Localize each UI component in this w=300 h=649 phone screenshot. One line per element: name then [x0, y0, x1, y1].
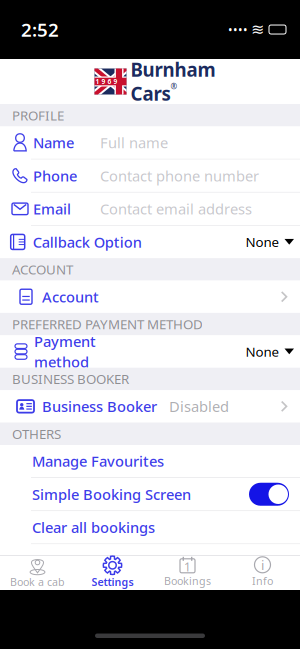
button[interactable]: Simple Booking Screen	[0, 478, 300, 510]
staticText: PROFILE	[12, 106, 64, 124]
button[interactable]: Book a cab	[0, 556, 75, 590]
staticText: Payment	[34, 332, 96, 351]
staticText: Bookings	[164, 574, 211, 588]
staticText: None	[245, 343, 279, 360]
staticText: 1 9 6 9	[95, 77, 117, 86]
staticText: ®	[170, 81, 177, 92]
staticText: ••••	[228, 21, 251, 37]
staticText: Clear all bookings	[32, 518, 155, 537]
button[interactable]: Phone	[0, 160, 300, 192]
staticText: PREFERRED PAYMENT METHOD	[12, 315, 203, 333]
staticText: Phone	[33, 166, 77, 185]
staticText: i	[261, 556, 264, 574]
button[interactable]: 1	[150, 556, 225, 590]
button[interactable]: Name	[0, 126, 300, 159]
staticText: ACCOUNT	[12, 260, 73, 278]
button[interactable]: Clear all bookings	[0, 511, 300, 543]
staticText: Problems? Call the office	[32, 551, 203, 570]
staticText: Info	[252, 574, 273, 588]
button[interactable]: i	[225, 556, 300, 590]
button[interactable]: Business Booker	[0, 390, 300, 422]
staticText: Settings	[91, 575, 133, 589]
button[interactable]: Email	[0, 193, 300, 225]
staticText: Manage Favourites	[32, 451, 164, 471]
staticText: Simple Booking Screen	[32, 484, 191, 504]
button[interactable]: Callback Option	[0, 226, 300, 258]
staticText: OTHERS	[12, 425, 61, 443]
staticText: ≋	[251, 20, 264, 39]
button[interactable]: Manage Favourites	[0, 445, 300, 477]
staticText: Burnham	[130, 57, 215, 82]
button[interactable]: Problems? Call the office	[0, 544, 300, 577]
staticText: BUSINESS BOOKER	[12, 370, 129, 388]
staticText: 1	[184, 559, 191, 575]
button[interactable]: Settings	[75, 556, 150, 590]
staticText: None	[245, 233, 279, 251]
staticText: Account	[42, 287, 99, 306]
staticText: Disabled	[169, 397, 229, 416]
staticText: Name	[33, 133, 74, 152]
staticText: Cars	[130, 81, 170, 106]
staticText: Email	[33, 199, 71, 219]
staticText: Callback Option	[33, 232, 142, 252]
staticText: 2:52	[21, 17, 59, 42]
staticText: method	[34, 352, 89, 371]
staticText: Contact phone number	[100, 166, 259, 185]
staticText: Full name	[100, 133, 168, 152]
staticText: Business Booker	[42, 397, 157, 416]
staticText: Contact email address	[100, 199, 252, 219]
staticText: Book a cab	[10, 575, 65, 589]
button[interactable]: Payment	[0, 335, 300, 368]
button[interactable]: Account	[0, 281, 300, 313]
